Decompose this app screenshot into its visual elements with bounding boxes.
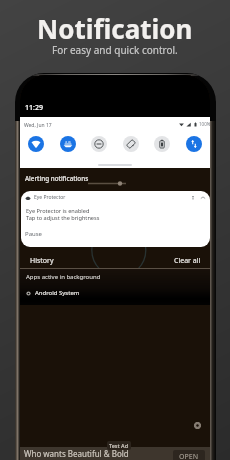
button[interactable]: Battery saver: [154, 136, 170, 152]
button[interactable]: Settings: [192, 420, 203, 431]
staticText: 100%: [199, 121, 210, 127]
staticText: OPEN: [179, 452, 199, 460]
button[interactable]: Pause: [25, 230, 42, 238]
staticText: For easy and quick control.: [52, 43, 178, 57]
staticText: Eye Protector: [34, 194, 66, 201]
staticText: History: [30, 256, 54, 266]
staticText: Tap to adjust the brightness: [26, 214, 100, 222]
button[interactable]: Mobile data: [60, 136, 76, 152]
button[interactable]: Snooze: [190, 195, 196, 201]
staticText: Apps active in background: [26, 273, 101, 281]
button[interactable]: OPEN: [173, 450, 205, 460]
button[interactable]: Expand: [200, 195, 206, 201]
staticText: Wed, Jun 17: [24, 122, 52, 129]
staticText: Pause: [25, 230, 42, 238]
staticText: Who wants Beautiful & Bold: [24, 448, 129, 459]
staticText: Alerting notifications: [25, 174, 89, 183]
button[interactable]: Wi-Fi: [28, 136, 44, 152]
button[interactable]: History: [28, 254, 56, 268]
button[interactable]: Eye Protector: [21, 191, 210, 247]
button[interactable]: Do not disturb: [91, 136, 107, 152]
staticText: Eye Protector is enabled: [26, 207, 90, 215]
staticText: 11:29: [25, 103, 43, 113]
staticText: Clear all: [174, 256, 201, 266]
staticText: Android System: [35, 289, 80, 297]
button[interactable]: Data saver: [186, 136, 202, 152]
staticText: Notification: [37, 11, 193, 46]
button[interactable]: Android System: [26, 287, 210, 299]
button[interactable]: Auto rotate: [123, 136, 139, 152]
staticText: Test Ad: [109, 442, 129, 449]
button[interactable]: Clear all: [172, 254, 203, 268]
